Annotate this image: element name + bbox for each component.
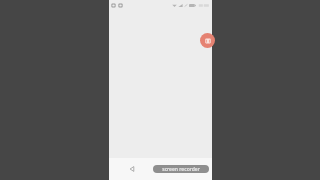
button[interactable]: Back: [126, 163, 138, 175]
staticText: screen recorder: [162, 166, 200, 173]
button[interactable]: Compose: [200, 33, 215, 48]
